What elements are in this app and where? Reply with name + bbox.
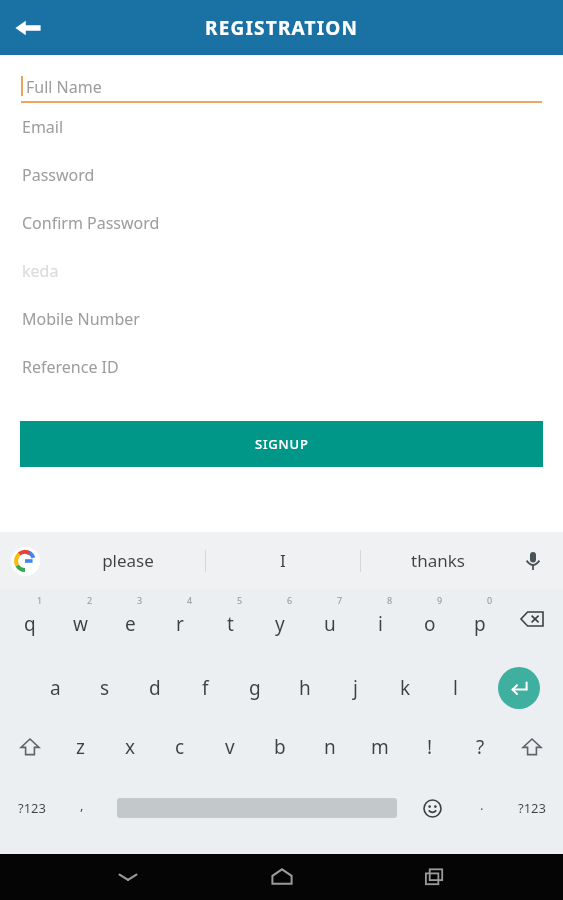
staticText: I: [280, 549, 286, 572]
staticText: l: [453, 675, 458, 701]
staticText: z: [76, 734, 85, 760]
staticText: j: [353, 675, 358, 701]
button[interactable]: k: [380, 659, 430, 717]
staticText: p: [474, 611, 486, 637]
staticText: k: [400, 675, 411, 701]
staticText: 5: [237, 594, 243, 606]
button[interactable]: Reference ID: [22, 343, 541, 391]
staticText: m: [371, 734, 389, 760]
button[interactable]: please: [50, 532, 205, 589]
button[interactable]: 7: [305, 590, 355, 648]
button[interactable]: Password: [22, 151, 541, 199]
button[interactable]: ?123: [7, 786, 57, 830]
button[interactable]: Full Name: [21, 71, 542, 103]
button[interactable]: a: [30, 659, 80, 717]
staticText: ?123: [518, 799, 546, 817]
button[interactable]: n: [305, 718, 355, 776]
button[interactable]: .: [457, 783, 507, 827]
button[interactable]: s: [80, 659, 130, 717]
button[interactable]: Recents: [409, 854, 461, 900]
staticText: t: [227, 611, 234, 637]
button[interactable]: Backspace: [507, 595, 557, 643]
staticText: s: [100, 675, 110, 701]
staticText: a: [50, 675, 61, 701]
staticText: SIGNUP: [255, 435, 309, 453]
button[interactable]: 4: [155, 590, 205, 648]
button[interactable]: Enter: [498, 667, 540, 709]
button[interactable]: Email: [22, 103, 541, 151]
staticText: 8: [387, 594, 393, 606]
button[interactable]: b: [255, 718, 305, 776]
button[interactable]: 6: [255, 590, 305, 648]
button[interactable]: 1: [5, 590, 55, 648]
button[interactable]: m: [355, 718, 405, 776]
button[interactable]: SIGNUP: [20, 421, 543, 467]
staticText: q: [24, 611, 36, 637]
staticText: !: [427, 734, 433, 760]
staticText: x: [125, 734, 136, 760]
staticText: please: [102, 549, 154, 572]
staticText: REGISTRATION: [205, 15, 359, 41]
staticText: 0: [487, 594, 493, 606]
staticText: 6: [287, 594, 293, 606]
staticText: 3: [137, 594, 143, 606]
staticText: thanks: [411, 549, 465, 572]
button[interactable]: Back: [102, 854, 154, 900]
staticText: h: [299, 675, 311, 701]
staticText: o: [424, 611, 436, 637]
button[interactable]: ?: [455, 718, 505, 776]
button[interactable]: 8: [355, 590, 405, 648]
button[interactable]: Home: [256, 854, 308, 900]
button[interactable]: Voice input: [515, 543, 551, 579]
staticText: c: [175, 734, 185, 760]
button[interactable]: 5: [205, 590, 255, 648]
button[interactable]: ,: [57, 783, 107, 827]
button[interactable]: x: [105, 718, 155, 776]
staticText: n: [324, 734, 336, 760]
staticText: Reference ID: [22, 356, 119, 378]
staticText: Full Name: [26, 76, 102, 98]
staticText: y: [275, 611, 285, 637]
button[interactable]: 3: [105, 590, 155, 648]
staticText: u: [324, 611, 336, 637]
button[interactable]: g: [230, 659, 280, 717]
staticText: ?: [476, 734, 485, 760]
staticText: w: [73, 611, 88, 637]
button[interactable]: Confirm Password: [22, 199, 541, 247]
button[interactable]: 2: [55, 590, 105, 648]
staticText: d: [149, 675, 161, 701]
button[interactable]: h: [280, 659, 330, 717]
button[interactable]: !: [405, 718, 455, 776]
button[interactable]: thanks: [361, 532, 515, 589]
staticText: Mobile Number: [22, 308, 140, 330]
button[interactable]: 9: [405, 590, 455, 648]
button[interactable]: ?123: [507, 786, 557, 830]
button[interactable]: z: [55, 718, 105, 776]
staticText: 1: [37, 594, 43, 606]
button[interactable]: I: [206, 532, 360, 589]
button[interactable]: v: [205, 718, 255, 776]
button[interactable]: d: [130, 659, 180, 717]
button[interactable]: f: [180, 659, 230, 717]
button[interactable]: j: [330, 659, 380, 717]
button[interactable]: l: [430, 659, 480, 717]
button[interactable]: 0: [455, 590, 505, 648]
button[interactable]: Back: [6, 6, 50, 50]
button[interactable]: Shift: [507, 723, 557, 771]
staticText: 2: [87, 594, 93, 606]
staticText: b: [274, 734, 286, 760]
button[interactable]: c: [155, 718, 205, 776]
button[interactable]: Shift: [5, 723, 55, 771]
button[interactable]: Google: [8, 544, 42, 578]
button[interactable]: Emoji: [407, 784, 457, 832]
staticText: ,: [80, 796, 84, 814]
staticText: i: [378, 611, 383, 637]
staticText: Password: [22, 164, 95, 186]
staticText: 4: [187, 594, 193, 606]
staticText: e: [125, 611, 136, 637]
staticText: 9: [437, 594, 443, 606]
button[interactable]: Mobile Number: [22, 295, 541, 343]
staticText: ?123: [18, 799, 46, 817]
